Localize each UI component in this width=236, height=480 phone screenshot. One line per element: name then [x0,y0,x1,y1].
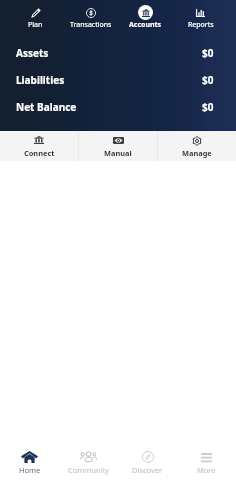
other: Discover [142,451,154,463]
staticText: Plan [28,20,43,30]
staticText: $0 [202,73,214,87]
staticText: Community [68,465,110,475]
button[interactable]: Home [0,445,59,478]
button[interactable]: Community [59,445,118,478]
other: Connect [34,136,44,144]
staticText: Manage [182,148,212,158]
staticText: $0 [202,100,214,114]
button[interactable]: Net Balance [0,93,236,120]
other: Home [21,451,38,463]
button[interactable]: Plan [8,0,63,32]
staticText: Manual [104,148,132,158]
button[interactable]: Connect [0,131,78,161]
button[interactable]: More [177,445,236,478]
other: Accounts [142,9,150,17]
button[interactable]: Liabilities [0,66,236,93]
other: Manual [113,137,124,144]
button[interactable]: Accounts [118,0,173,32]
staticText: $0 [202,46,214,60]
staticText: Accounts [129,20,162,30]
button[interactable]: Reports [173,0,228,32]
staticText: Liabilities [16,73,65,87]
button[interactable]: Discover [118,445,177,478]
other: Manage [192,136,202,144]
button[interactable]: Transactions [63,0,118,32]
staticText: Assets [16,46,49,60]
staticText: Home [19,465,41,475]
other: Plan [31,8,41,18]
button[interactable]: Manage [158,131,236,161]
staticText: Net Balance [16,100,77,114]
other: Transactions [86,8,96,18]
other: Community [81,451,96,462]
button[interactable]: Assets [0,39,236,66]
staticText: Discover [132,465,163,475]
staticText: Connect [24,148,55,158]
button[interactable]: Manual [79,131,157,161]
other: More [201,452,212,462]
staticText: Reports [188,20,214,30]
staticText: More [197,465,216,475]
other: Reports [196,9,205,17]
staticText: Transactions [70,20,112,30]
